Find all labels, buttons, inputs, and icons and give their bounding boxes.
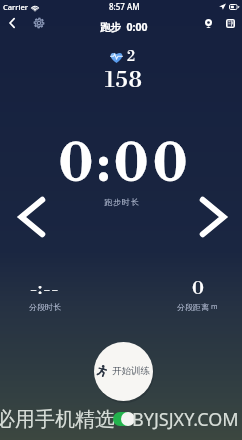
staticText: 必用手机精选: [0, 407, 115, 432]
staticText: 8:57 AM: [109, 1, 140, 12]
button[interactable]: Music: [220, 13, 240, 33]
staticText: 0:00: [59, 133, 192, 197]
staticText: 2: [127, 48, 135, 66]
staticText: 跑步 0:00: [100, 20, 148, 34]
button[interactable]: Previous lap: [12, 194, 50, 240]
staticText: 158: [105, 67, 144, 95]
staticText: 跑步时长: [104, 197, 140, 207]
staticText: BYJSJXY.COM: [132, 407, 239, 432]
staticText: 开始训练: [112, 365, 150, 377]
button[interactable]: Settings: [29, 13, 49, 33]
button[interactable]: Next lap: [194, 194, 232, 240]
staticText: 分段距离: [177, 302, 209, 312]
staticText: m: [211, 302, 218, 312]
staticText: Carrier: [3, 2, 28, 12]
staticText: 分段时长: [29, 302, 61, 312]
button[interactable]: 开始训练: [94, 342, 153, 401]
button[interactable]: Back: [2, 13, 22, 33]
button[interactable]: Location: [198, 13, 218, 33]
staticText: 0: [192, 277, 204, 300]
staticText: -:--: [30, 277, 60, 300]
